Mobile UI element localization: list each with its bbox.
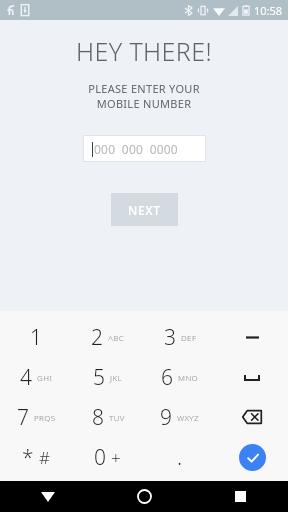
staticText: 5 (93, 363, 105, 392)
staticText: 7 (17, 403, 29, 432)
button[interactable]: Space (216, 357, 288, 397)
button[interactable]: 000 000 0000 (83, 135, 206, 162)
button[interactable]: 4 (0, 357, 72, 397)
staticText: 000 000 0000 (94, 141, 178, 157)
button[interactable]: 3 (144, 317, 216, 357)
button[interactable]: Done (216, 437, 288, 477)
button[interactable]: Back (0, 481, 96, 512)
staticText: * (22, 443, 34, 472)
staticText: WXYZ (177, 412, 200, 423)
staticText: 0 (94, 443, 106, 472)
button[interactable]: 8 (72, 397, 144, 437)
button[interactable]: NEXT (111, 193, 178, 226)
button[interactable]: 2 (72, 317, 144, 357)
button[interactable]: . (144, 437, 216, 477)
button[interactable]: Dash (216, 317, 288, 357)
staticText: GHI (37, 372, 53, 383)
staticText: MNO (178, 372, 199, 383)
staticText: PRQS (34, 412, 56, 423)
button[interactable]: 5 (72, 357, 144, 397)
staticText: 10:58 (254, 3, 283, 18)
staticText: 6 (161, 363, 173, 392)
staticText: 4 (20, 363, 32, 392)
button[interactable]: Backspace (216, 397, 288, 437)
button[interactable]: Recents (192, 481, 288, 512)
staticText: 1 (30, 323, 42, 352)
staticText: 8 (92, 403, 104, 432)
button[interactable]: * (0, 437, 72, 477)
button[interactable]: Home (96, 481, 192, 512)
button[interactable]: 9 (144, 397, 216, 437)
button[interactable]: 6 (144, 357, 216, 397)
staticText: 2 (91, 323, 103, 352)
staticText: + (111, 446, 122, 469)
button[interactable]: 0 (72, 437, 144, 477)
staticText: ABC (108, 332, 125, 343)
staticText: 3 (164, 323, 176, 352)
staticText: NEXT (128, 202, 161, 218)
staticText: HEY THERE! (76, 34, 212, 68)
staticText: TUV (109, 412, 125, 423)
button[interactable]: 1 (0, 317, 72, 357)
staticText: PLEASE ENTER YOUR MOBILE NUMBER (88, 81, 200, 111)
staticText: JKL (110, 372, 123, 383)
staticText: # (39, 446, 51, 469)
staticText: 9 (160, 403, 172, 432)
staticText: DEF (181, 332, 197, 343)
button[interactable]: 7 (0, 397, 72, 437)
staticText: . (177, 443, 183, 472)
